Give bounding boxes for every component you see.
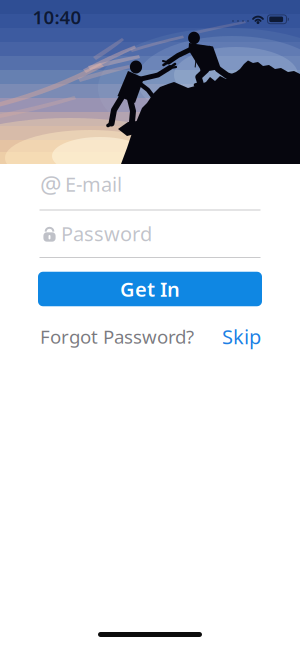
button[interactable]: Forgot Password? [40,324,194,349]
button[interactable]: Skip [222,323,261,350]
staticText: Get In [120,276,180,302]
button[interactable]: Get In [38,272,262,306]
button[interactable]: Password [0,218,300,258]
staticText: E-mail [65,171,122,197]
button[interactable]: E-mail [0,169,300,211]
staticText: @ [40,168,62,200]
staticText: 10:40 [32,5,81,29]
staticText: Skip [222,323,261,350]
staticText: Password [61,220,152,247]
staticText: Forgot Password? [40,324,194,349]
